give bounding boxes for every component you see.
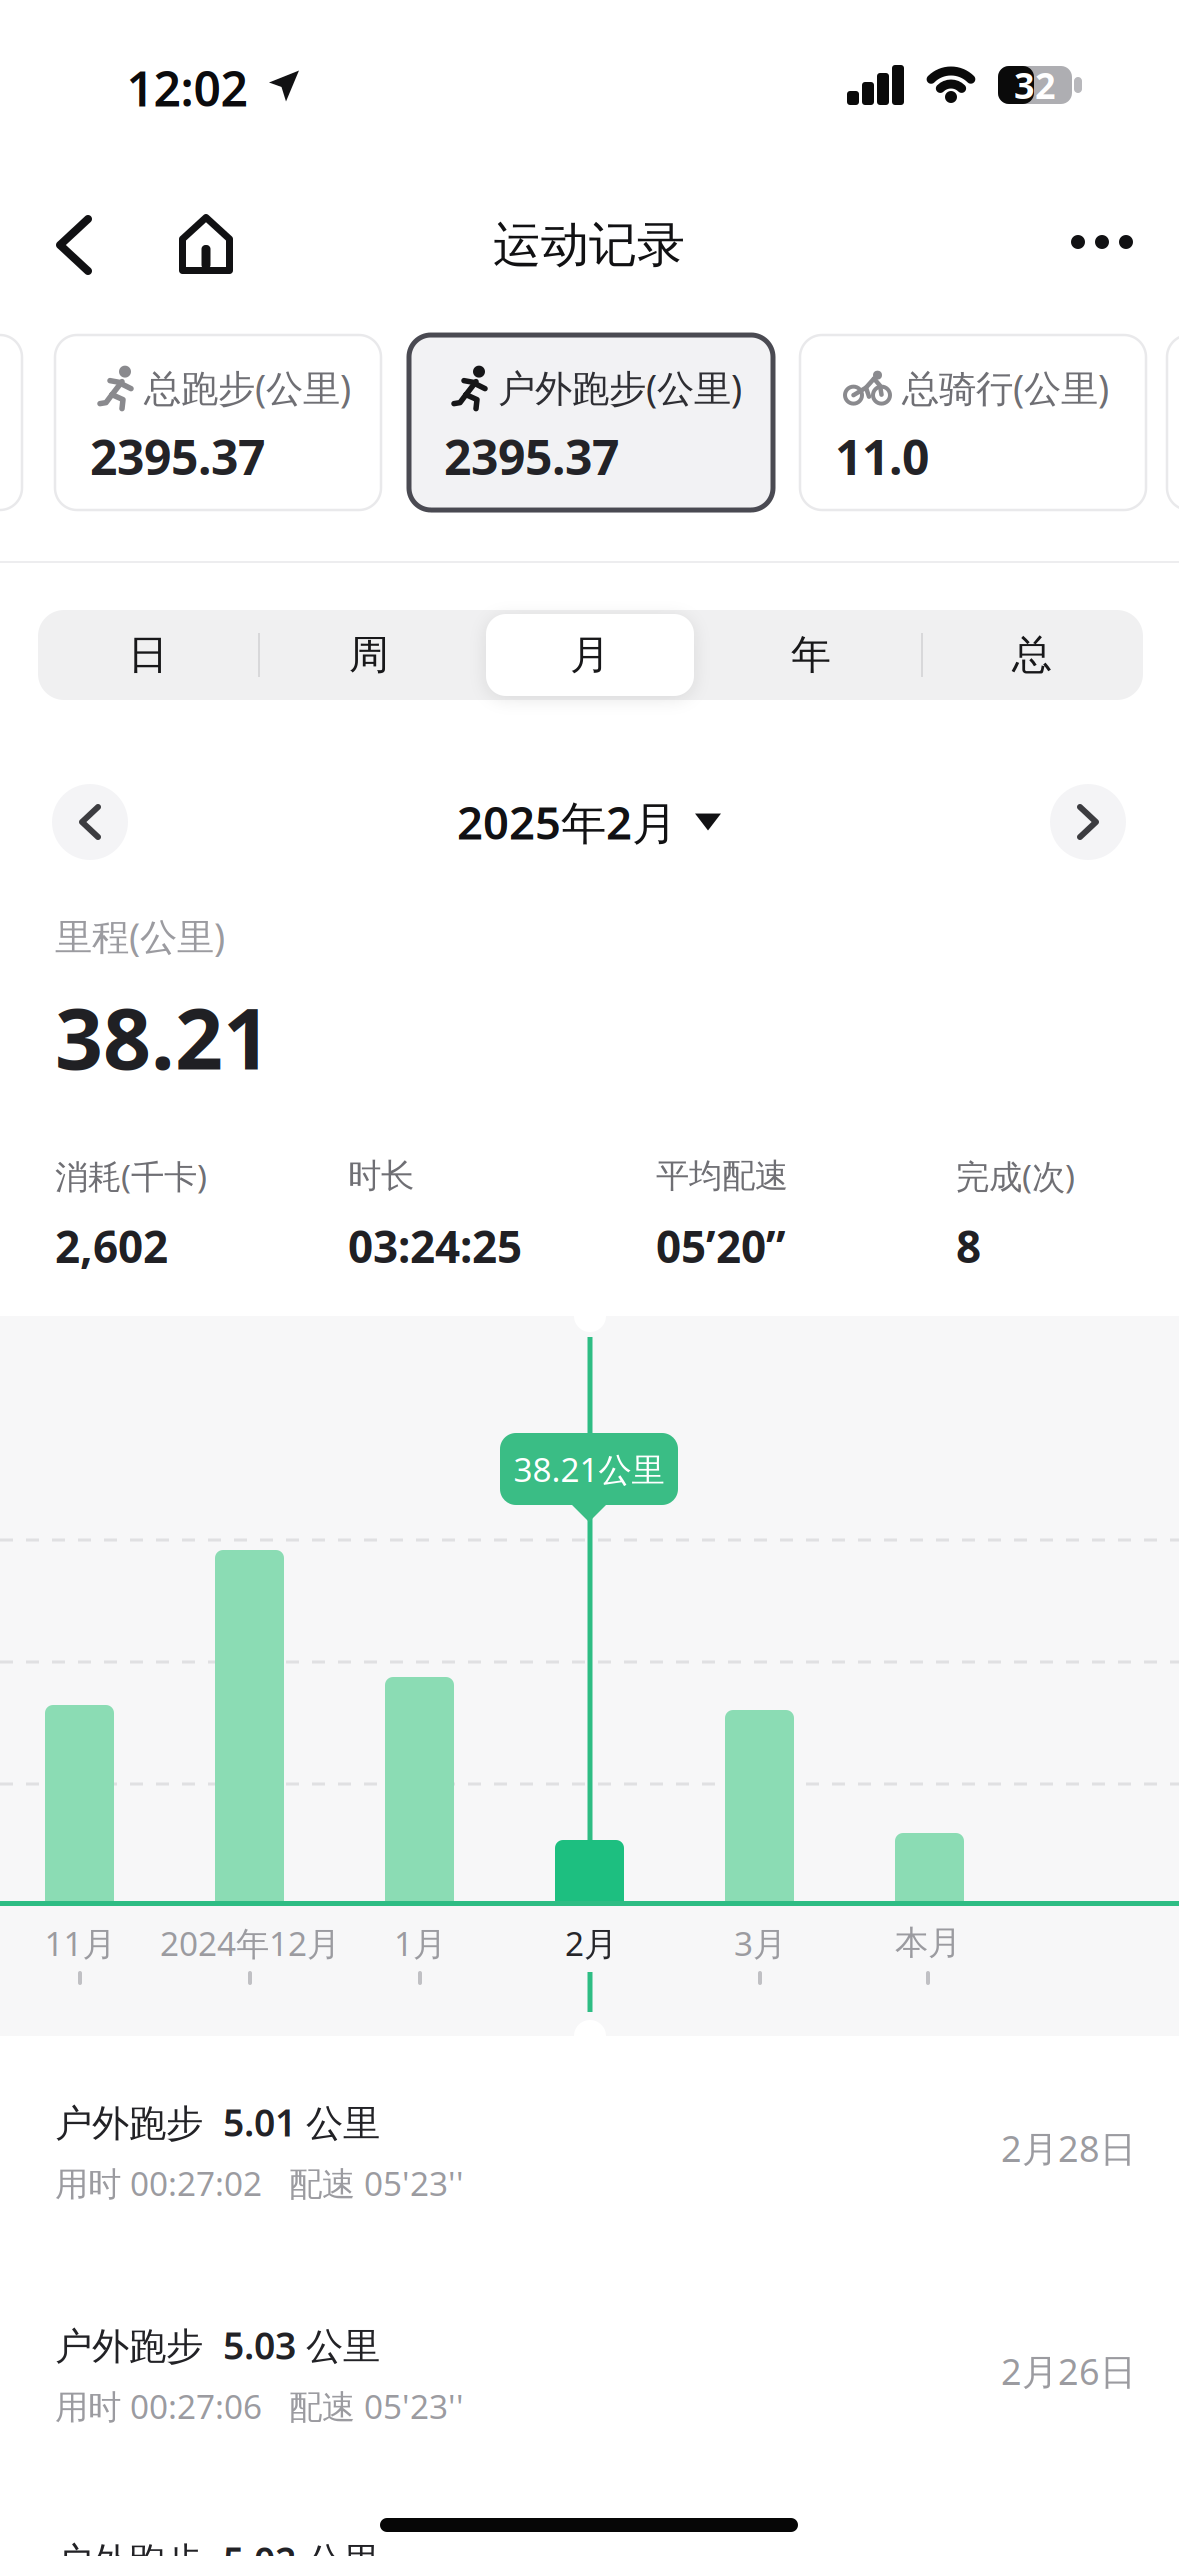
staticText: 2月 <box>565 1921 617 1965</box>
staticText: 2395.37 <box>444 424 619 488</box>
staticText: 03:24:25 <box>348 1217 522 1275</box>
staticText: 周 <box>349 630 389 679</box>
staticText: 总 <box>1012 630 1052 679</box>
staticText: 本月 <box>895 1922 961 1963</box>
staticText: 户外跑步(公里) <box>498 363 742 412</box>
staticText: 日 <box>128 630 168 679</box>
staticText: 05’20” <box>656 1217 786 1275</box>
button[interactable]: 总 <box>922 610 1142 700</box>
staticText: 总骑行(公里) <box>902 363 1109 412</box>
staticText: 2395.37 <box>90 424 265 488</box>
staticText: 平均配速 <box>656 1155 788 1196</box>
button[interactable]: 户外跑步 5.03 公里 <box>0 2315 1179 2445</box>
button[interactable] <box>58 217 90 273</box>
staticText: 消耗(千卡) <box>55 1154 207 1198</box>
staticText: 12:02 <box>126 56 247 120</box>
button[interactable]: 2025年2月 <box>457 782 721 862</box>
staticText: 里程(公里) <box>55 911 225 961</box>
button[interactable]: 户外跑步 5.02 公里 <box>55 2532 855 2556</box>
staticText: 2,602 <box>55 1217 168 1275</box>
staticText: 2024年12月 <box>160 1921 340 1965</box>
staticText: 时长 <box>348 1155 414 1196</box>
staticText: 完成(次) <box>956 1154 1075 1198</box>
staticText: 用时 00:27:02 配速 05'23'' <box>55 2161 464 2205</box>
staticText: 户外跑步 5.02 公里 <box>55 2535 380 2556</box>
staticText: 用时 00:27:06 配速 05'23'' <box>55 2384 464 2428</box>
button[interactable]: 年 <box>701 610 921 700</box>
button[interactable]: 总跑步(公里) <box>55 335 381 510</box>
staticText: 2月28日 <box>1001 2124 1136 2172</box>
staticText: 运动记录 <box>493 215 685 274</box>
staticText: 11.0 <box>835 424 929 488</box>
staticText: 11月 <box>44 1921 115 1965</box>
button[interactable] <box>1050 784 1126 860</box>
button[interactable]: 周 <box>259 610 479 700</box>
button[interactable]: 户外跑步 5.01 公里 <box>0 2092 1179 2222</box>
staticText: 月 <box>570 630 610 679</box>
staticText: 户外跑步 5.03 公里 <box>55 2320 380 2370</box>
staticText: 38.21 <box>55 981 271 1093</box>
staticText: 户外跑步 5.01 公里 <box>55 2097 380 2147</box>
staticText: 总跑步(公里) <box>144 363 351 412</box>
staticText: 年 <box>791 630 831 679</box>
button[interactable] <box>52 784 128 860</box>
staticText: 8 <box>956 1217 981 1275</box>
button[interactable] <box>1062 212 1142 272</box>
staticText: 38.21公里 <box>513 1447 664 1491</box>
button[interactable]: 总骑行(公里) <box>800 335 1146 510</box>
staticText: 1月 <box>394 1921 446 1965</box>
button[interactable]: 日 <box>38 610 258 700</box>
staticText: 2月26日 <box>1001 2347 1136 2395</box>
staticText: 32 <box>1014 61 1056 109</box>
staticText: 2025年2月 <box>457 792 677 852</box>
button[interactable]: 月 <box>480 610 700 700</box>
button[interactable] <box>179 214 233 274</box>
staticText: 3月 <box>734 1921 786 1965</box>
button[interactable]: 户外跑步(公里) <box>409 335 773 510</box>
